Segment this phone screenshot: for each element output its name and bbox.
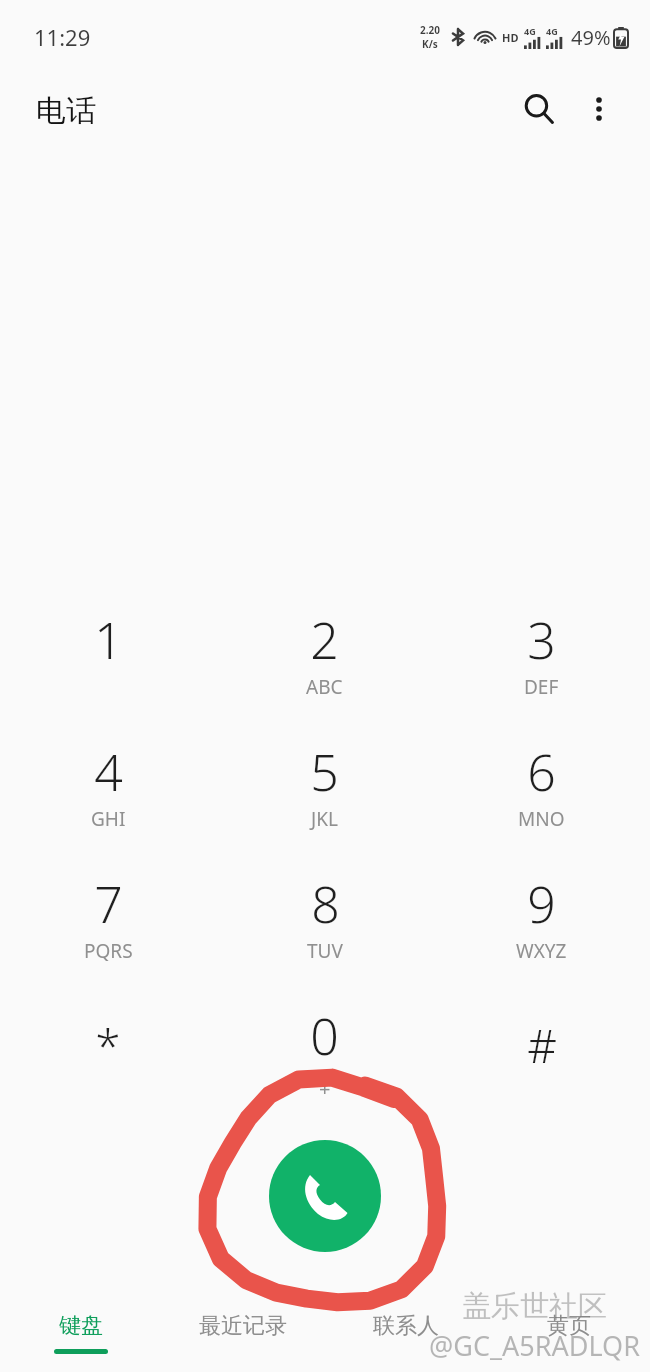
staticText: 3 <box>527 606 556 674</box>
staticText: 1 <box>94 606 123 674</box>
button[interactable]: * <box>0 992 216 1124</box>
staticText: 8 <box>311 870 340 938</box>
button[interactable]: 1 <box>0 596 216 728</box>
staticText: 4G <box>524 25 536 37</box>
button[interactable]: 8 <box>216 860 433 992</box>
staticText: 4G <box>546 25 558 37</box>
staticText: + <box>319 1075 331 1102</box>
staticText: 盖乐世社区 <box>462 1288 607 1325</box>
button[interactable]: 0 <box>216 992 433 1124</box>
staticText: 5 <box>310 738 339 806</box>
staticText: 9 <box>527 870 556 938</box>
button[interactable]: 2 <box>216 596 433 728</box>
staticText: 电话 <box>36 92 96 130</box>
button[interactable]: 键盘 <box>0 1282 162 1372</box>
button[interactable]: 5 <box>216 728 433 860</box>
button[interactable]: Call <box>269 1140 381 1252</box>
staticText: GHI <box>91 806 126 832</box>
staticText: 黄页 <box>547 1312 591 1340</box>
button[interactable]: 9 <box>433 860 650 992</box>
staticText: @GC_A5RADLQR <box>429 1327 640 1364</box>
staticText: 键盘 <box>59 1312 103 1340</box>
button[interactable]: 7 <box>0 860 216 992</box>
button[interactable]: 联系人 <box>324 1282 487 1372</box>
staticText: * <box>95 1014 121 1077</box>
staticText: PQRS <box>84 938 133 964</box>
staticText: JKL <box>311 806 338 832</box>
button[interactable]: 3 <box>433 596 650 728</box>
staticText: 联系人 <box>373 1312 439 1340</box>
staticText: 0 <box>310 1002 339 1070</box>
staticText: HD <box>502 30 519 45</box>
staticText: 2.20 <box>420 23 440 37</box>
staticText: DEF <box>524 674 559 700</box>
staticText: MNO <box>518 806 565 832</box>
button[interactable]: 最近记录 <box>162 1282 324 1372</box>
button[interactable]: 黄页 <box>487 1282 650 1372</box>
staticText: TUV <box>307 938 343 964</box>
staticText: 11:29 <box>34 22 91 52</box>
button[interactable]: 4 <box>0 728 216 860</box>
staticText: # <box>527 1014 557 1077</box>
button[interactable]: More options <box>572 82 626 136</box>
staticText: 7 <box>94 870 123 938</box>
staticText: 2 <box>310 606 339 674</box>
staticText: 最近记录 <box>199 1312 287 1340</box>
staticText: K/s <box>422 37 438 51</box>
button[interactable]: Search <box>512 82 566 136</box>
staticText: 49% <box>571 24 611 51</box>
staticText: 6 <box>527 738 556 806</box>
staticText: 4 <box>94 738 123 806</box>
staticText: ABC <box>306 674 343 700</box>
button[interactable]: # <box>433 992 650 1124</box>
button[interactable]: 6 <box>433 728 650 860</box>
staticText: WXYZ <box>516 938 567 964</box>
